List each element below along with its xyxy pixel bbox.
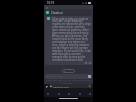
button[interactable]: Retry response [88, 61, 91, 64]
staticText: claude.ai/chat [53, 85, 69, 88]
button[interactable]: Send [88, 75, 91, 78]
button[interactable]: ↻ Retry [62, 69, 75, 73]
button[interactable]: claude.ai/chat [49, 84, 92, 88]
button[interactable]: Tabs [45, 85, 48, 88]
button[interactable]: Reply to Claude [45, 74, 92, 79]
staticText: Claude.ai [51, 11, 63, 15]
staticText: ↻ Retry [64, 70, 73, 73]
staticText: 10:19 [47, 1, 55, 5]
button[interactable]: Back [45, 91, 50, 96]
button[interactable]: Bookmarks [77, 91, 82, 96]
button[interactable]: Forward [56, 91, 61, 96]
button[interactable]: Home [66, 91, 71, 96]
button[interactable]: Menu [45, 6, 48, 9]
staticText: Reply to Claude [46, 75, 63, 78]
staticText: Claude can make mistakes. Please double-… [44, 79, 93, 84]
button[interactable]: Copy [84, 61, 87, 64]
staticText: I'd be glad to help you explore that ide… [52, 17, 91, 61]
button[interactable]: Account [87, 91, 92, 96]
other: Reload [89, 85, 91, 87]
button[interactable]: Claude.ai [44, 9, 93, 16]
